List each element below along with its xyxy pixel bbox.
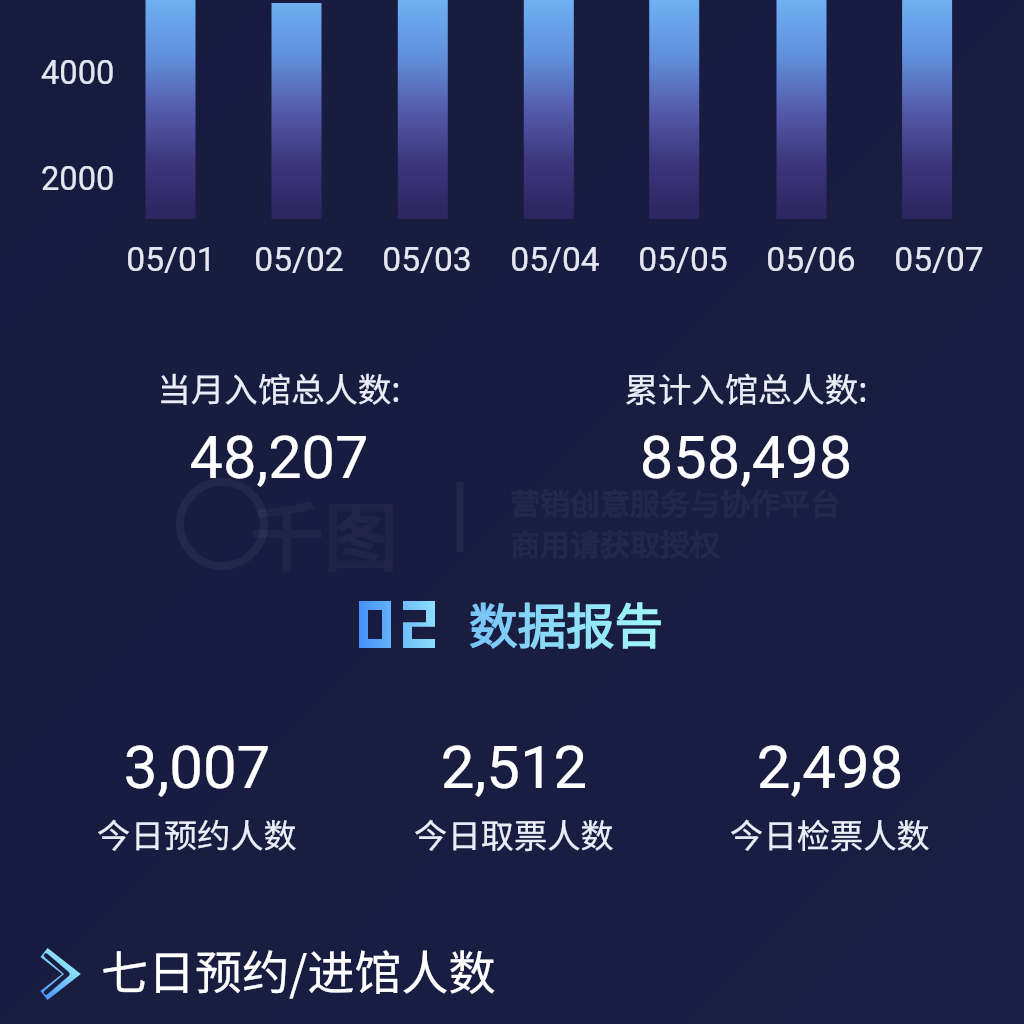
staticText: 2000 [41,160,115,198]
staticText: 05/05 [333,240,1024,279]
staticText: 今日取票人数 [164,809,864,857]
staticText: 05/04 [205,240,905,279]
staticText: 4000 [41,54,115,92]
staticText: 05/01 [0,240,521,279]
button[interactable]: Section 02 [352,592,668,654]
staticText: 858,498 [396,423,1024,493]
staticText: 累计入馆总人数: [396,363,1024,411]
staticText: 七日预约/进馆人数 [101,935,496,1003]
staticText: 今日检票人数 [480,809,1024,857]
staticText: 48,207 [0,423,629,493]
staticText: 营销创意服务与协作平台 [510,480,840,523]
staticText: 2,498 [480,732,1024,802]
staticText: 2,512 [164,732,864,802]
staticText: 3,007 [0,732,547,802]
other: Seven day reservations [36,938,82,1000]
other: Section 02 [359,601,437,649]
staticText: 当月入馆总人数: [0,363,629,411]
staticText: 05/02 [0,240,649,279]
staticText: 商用请获取授权 [510,521,720,564]
staticText: 05/06 [461,240,1024,279]
staticText: 05/03 [77,240,777,279]
staticText: 数据报告 [469,588,664,650]
staticText: 今日预约人数 [0,809,547,857]
button[interactable]: Seven day reservations [36,935,496,1003]
staticText: 千图 [250,478,398,585]
staticText: 05/07 [589,240,1024,279]
